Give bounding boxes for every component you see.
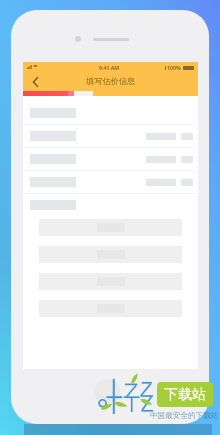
button[interactable]: 下载站 bbox=[157, 382, 213, 407]
staticText: 9:41 AM bbox=[99, 64, 120, 71]
staticText: 中国最安全的下载站 bbox=[150, 411, 219, 421]
button[interactable] bbox=[23, 125, 198, 148]
button[interactable] bbox=[23, 102, 198, 125]
button[interactable] bbox=[23, 194, 198, 217]
staticText: 下载站 bbox=[164, 386, 206, 404]
staticText: 100% bbox=[167, 64, 181, 71]
button[interactable] bbox=[23, 171, 198, 194]
button[interactable]: Back bbox=[26, 73, 44, 91]
staticText: 填写估价信息 bbox=[86, 76, 136, 86]
button[interactable] bbox=[23, 148, 198, 171]
